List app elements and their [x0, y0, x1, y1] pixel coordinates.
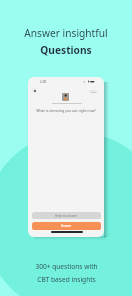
button[interactable]: Skip	[89, 90, 98, 93]
button[interactable]: Answer	[32, 222, 101, 230]
staticText: Skip	[91, 90, 96, 93]
staticText: Help me answer	[55, 214, 78, 218]
staticText: Questions	[40, 43, 92, 57]
staticText: What is stressing you out right now?	[36, 108, 96, 113]
staticText: Answer	[61, 224, 72, 228]
staticText: Answer insightful	[24, 26, 108, 40]
button[interactable]: Close	[32, 88, 37, 93]
staticText: CBT based insights	[37, 275, 96, 284]
staticText: 2:00	[40, 80, 47, 84]
staticText: 300+ questions with	[35, 262, 98, 271]
button[interactable]: Help me answer	[32, 212, 101, 219]
